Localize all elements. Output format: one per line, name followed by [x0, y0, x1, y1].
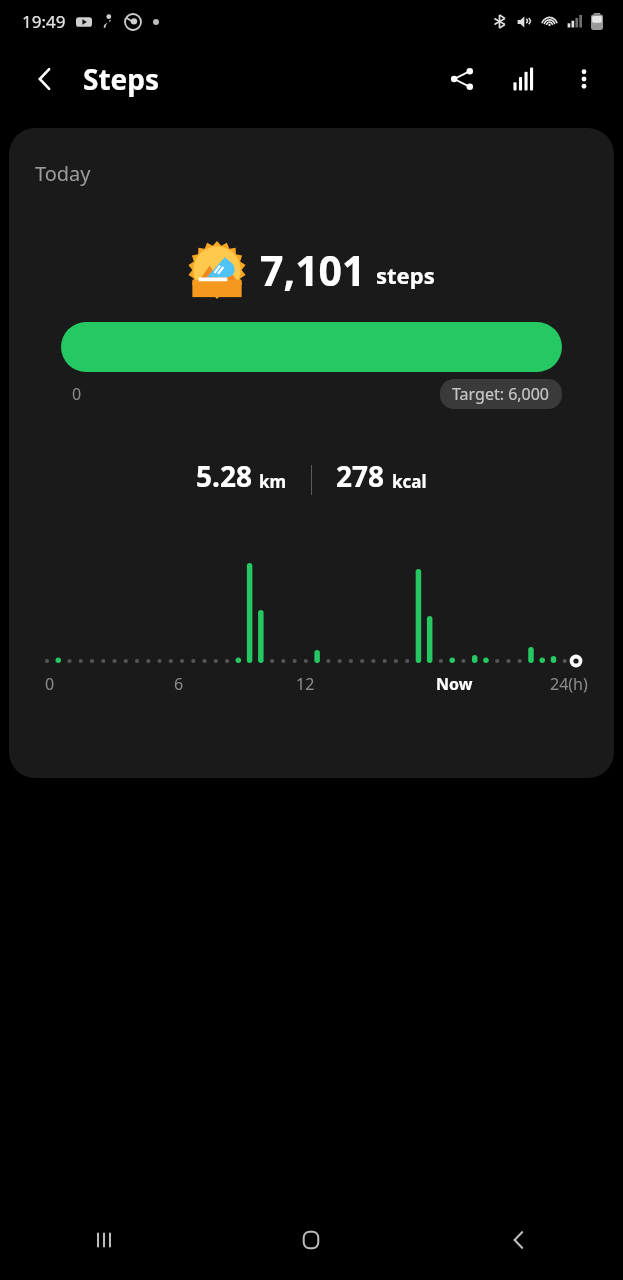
staticText: 19:49 — [22, 10, 66, 33]
staticText: km — [259, 470, 287, 493]
staticText: kcal — [392, 470, 427, 493]
staticText: 24(h) — [550, 673, 588, 695]
staticText: 0 — [72, 383, 82, 405]
button[interactable]: Share — [439, 56, 485, 102]
button[interactable]: Back — [415, 1200, 623, 1280]
staticText: 5.28 — [196, 457, 252, 495]
button[interactable]: Chart — [501, 56, 547, 102]
staticText: steps — [376, 260, 435, 290]
button[interactable]: Home — [207, 1200, 415, 1280]
button[interactable]: Today — [9, 128, 614, 778]
staticText: 6 — [174, 673, 184, 695]
button[interactable]: Back — [22, 56, 68, 102]
button[interactable]: More options — [561, 56, 607, 102]
staticText: Today — [35, 160, 91, 187]
staticText: Steps — [83, 60, 160, 98]
button[interactable]: Recents — [0, 1200, 207, 1280]
staticText: 278 — [336, 457, 385, 495]
staticText: 7,101 — [260, 242, 366, 298]
staticText: 12 — [296, 673, 315, 695]
staticText: 0 — [45, 673, 55, 695]
staticText: Now — [436, 673, 473, 695]
staticText: Target: 6,000 — [452, 383, 550, 405]
